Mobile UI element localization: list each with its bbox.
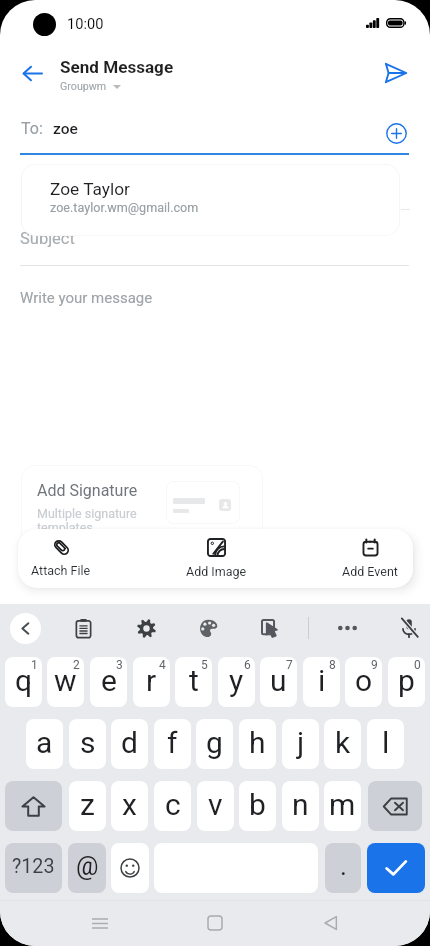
staticText: 2 — [73, 658, 80, 672]
staticText: o — [355, 663, 373, 698]
button[interactable]: x — [111, 781, 148, 831]
button[interactable]: q — [5, 657, 42, 707]
staticText: Send Message — [60, 57, 174, 77]
staticText: y — [229, 663, 244, 698]
button[interactable]: r — [133, 657, 170, 707]
staticText: Write your message — [20, 289, 153, 307]
staticText: t — [189, 663, 199, 698]
button[interactable]: Shift — [5, 781, 62, 831]
staticText: 4 — [159, 658, 166, 672]
staticText: f — [167, 725, 178, 760]
button[interactable]: Settings — [128, 610, 164, 646]
staticText: r — [146, 663, 157, 698]
button[interactable]: Emoji — [111, 843, 149, 893]
button[interactable]: Back — [12, 53, 52, 93]
button[interactable]: l — [367, 719, 404, 769]
staticText: g — [206, 725, 223, 760]
button[interactable]: Backspace — [368, 781, 422, 831]
staticText: 6 — [244, 658, 251, 672]
button[interactable]: n — [282, 781, 319, 831]
staticText: v — [208, 787, 223, 822]
button[interactable]: Zoe Taylor — [21, 164, 400, 236]
button[interactable]: e — [90, 657, 127, 707]
button[interactable]: Groupwm — [60, 80, 121, 93]
staticText: 0 — [414, 658, 421, 672]
button[interactable]: Voice input off — [391, 610, 427, 646]
staticText: i — [318, 663, 326, 698]
button[interactable]: h — [239, 719, 276, 769]
staticText: zoe — [53, 120, 78, 138]
button[interactable]: b — [239, 781, 276, 831]
staticText: Groupwm — [60, 80, 107, 93]
button[interactable]: i — [303, 657, 340, 707]
staticText: To: — [21, 119, 43, 138]
staticText: x — [122, 787, 137, 822]
button[interactable]: ?123 — [5, 843, 62, 893]
staticText: e — [101, 663, 117, 698]
button[interactable]: Recents — [82, 905, 118, 941]
button[interactable]: Enter — [367, 843, 425, 893]
staticText: . — [340, 851, 347, 881]
button[interactable]: Add Event — [335, 529, 405, 588]
staticText: 10:00 — [67, 15, 104, 32]
button[interactable]: Add recipient — [380, 117, 412, 149]
staticText: Attach File — [31, 563, 91, 578]
button[interactable]: More options — [329, 610, 365, 646]
staticText: m — [329, 787, 356, 822]
staticText: ?123 — [12, 855, 55, 878]
button[interactable]: Home — [197, 905, 233, 941]
button[interactable]: v — [197, 781, 234, 831]
button[interactable]: a — [26, 719, 63, 769]
button[interactable]: o — [345, 657, 382, 707]
button[interactable]: f — [154, 719, 191, 769]
button[interactable]: c — [154, 781, 191, 831]
staticText: h — [249, 725, 266, 760]
staticText: 1 — [31, 658, 38, 672]
staticText: Add Signature — [37, 481, 138, 500]
button[interactable]: m — [324, 781, 361, 831]
staticText: n — [292, 787, 309, 822]
button[interactable]: Back — [312, 905, 348, 941]
staticText: a — [36, 725, 53, 760]
button[interactable]: Add Signature — [21, 465, 263, 545]
button[interactable]: Resize — [252, 610, 288, 646]
button[interactable]: d — [111, 719, 148, 769]
staticText: l — [382, 725, 390, 760]
staticText: j — [297, 725, 305, 760]
button[interactable]: Theme — [190, 610, 226, 646]
staticText: w — [54, 663, 77, 698]
staticText: Zoe Taylor — [50, 179, 130, 199]
button[interactable]: Add Image — [181, 529, 251, 588]
button[interactable]: u — [260, 657, 297, 707]
button[interactable]: Send — [375, 53, 415, 93]
staticText: 5 — [201, 658, 208, 672]
button[interactable]: j — [282, 719, 319, 769]
staticText: 3 — [116, 658, 123, 672]
button[interactable]: . — [325, 843, 361, 893]
staticText: Multiple signature templates — [37, 506, 137, 535]
staticText: q — [15, 663, 33, 698]
staticText: k — [335, 725, 351, 760]
staticText: p — [398, 663, 415, 698]
button[interactable]: s — [69, 719, 106, 769]
button[interactable]: p — [388, 657, 425, 707]
staticText: s — [80, 725, 96, 760]
button[interactable]: w — [47, 657, 84, 707]
staticText: c — [165, 787, 181, 822]
button[interactable]: t — [175, 657, 212, 707]
staticText: 7 — [286, 658, 293, 672]
button[interactable]: k — [324, 719, 361, 769]
button[interactable]: @ — [68, 843, 106, 893]
button[interactable]: y — [218, 657, 255, 707]
staticText: Add Event — [342, 564, 398, 579]
button[interactable]: Previous — [10, 613, 41, 644]
staticText: z — [80, 787, 95, 822]
staticText: u — [270, 663, 287, 698]
button[interactable]: Attach File — [26, 529, 96, 588]
staticText: @ — [76, 852, 99, 881]
staticText: d — [121, 725, 138, 760]
button[interactable]: g — [196, 719, 233, 769]
button[interactable]: Clipboard — [65, 610, 101, 646]
button[interactable]: z — [69, 781, 106, 831]
